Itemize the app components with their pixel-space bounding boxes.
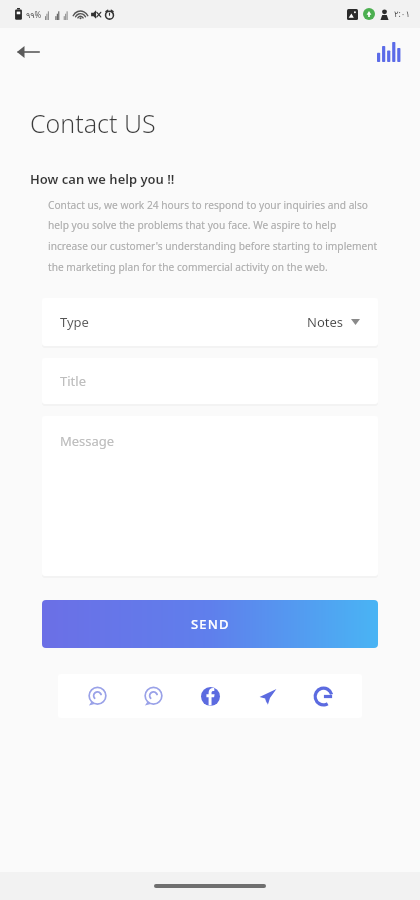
staticText: Notes	[307, 313, 343, 331]
staticText: How can we help you !!	[30, 170, 175, 188]
button[interactable]: Telegram	[249, 678, 285, 714]
staticText: ٩٩%	[26, 9, 42, 20]
staticText: Title	[60, 372, 86, 390]
button[interactable]: Back	[8, 32, 48, 72]
staticText: Contact us, we work 24 hours to respond …	[48, 198, 378, 274]
button[interactable]: Message	[42, 416, 378, 576]
staticText: Message	[60, 432, 115, 450]
button[interactable]: SEND	[42, 600, 378, 648]
staticText: SEND	[191, 615, 230, 633]
staticText: Type	[60, 313, 89, 331]
button[interactable]: Facebook	[192, 678, 228, 714]
staticText: Contact US	[30, 106, 156, 140]
button[interactable]: WhatsApp Business	[135, 678, 171, 714]
button[interactable]: Google	[305, 678, 341, 714]
staticText: ٢:٠١	[394, 8, 410, 20]
button[interactable]: WhatsApp	[79, 678, 115, 714]
button[interactable]: Statistics	[368, 32, 408, 72]
button[interactable]: Type	[42, 298, 378, 346]
button[interactable]: Title	[42, 358, 378, 404]
